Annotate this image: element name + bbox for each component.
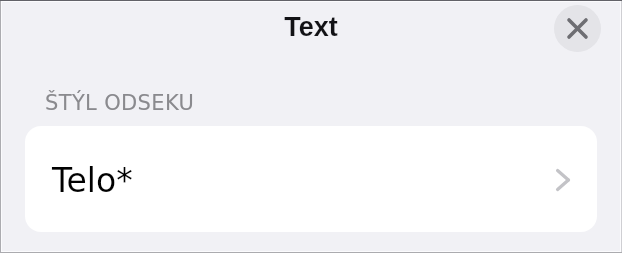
staticText: Telo*: [52, 161, 133, 199]
staticText: Text: [284, 12, 338, 42]
staticText: ŠTÝL ODSEKU: [45, 91, 195, 115]
button[interactable]: Close: [554, 5, 601, 52]
button[interactable]: Telo*: [25, 126, 597, 232]
